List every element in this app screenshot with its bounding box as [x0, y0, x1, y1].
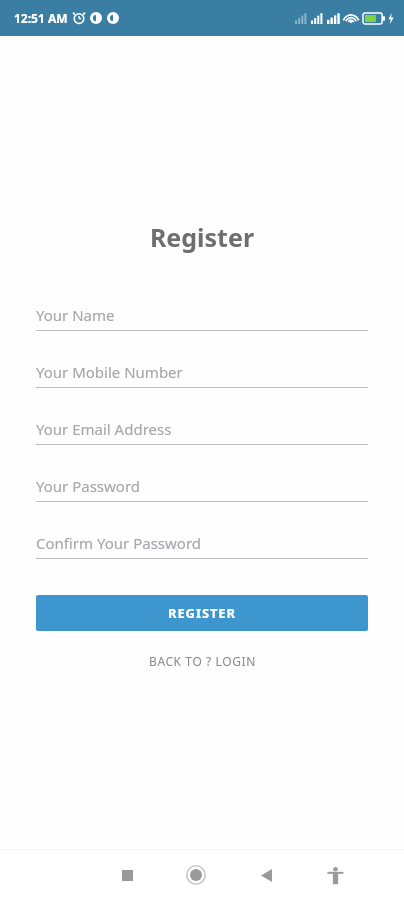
button[interactable]: Your Email Address: [36, 413, 368, 444]
button[interactable]: Your Name: [36, 299, 368, 330]
staticText: REGISTER: [168, 604, 236, 622]
staticText: 12:51 AM: [14, 10, 68, 26]
staticText: Your Password: [36, 476, 141, 496]
staticText: Your Mobile Number: [36, 362, 183, 382]
staticText: Register: [0, 220, 404, 254]
button[interactable]: Your Mobile Number: [36, 356, 368, 387]
button[interactable]: Recents: [105, 853, 149, 897]
staticText: Confirm Your Password: [36, 533, 202, 553]
button[interactable]: Back: [244, 853, 288, 897]
button[interactable]: Home: [174, 853, 218, 897]
button[interactable]: BACK TO ? LOGIN: [0, 653, 404, 669]
staticText: BACK TO ? LOGIN: [149, 653, 256, 669]
button[interactable]: Accessibility: [313, 853, 357, 897]
button[interactable]: Confirm Your Password: [36, 527, 368, 558]
staticText: Your Email Address: [36, 419, 172, 439]
staticText: Your Name: [36, 305, 115, 325]
button[interactable]: Your Password: [36, 470, 368, 501]
button[interactable]: REGISTER: [36, 595, 368, 631]
